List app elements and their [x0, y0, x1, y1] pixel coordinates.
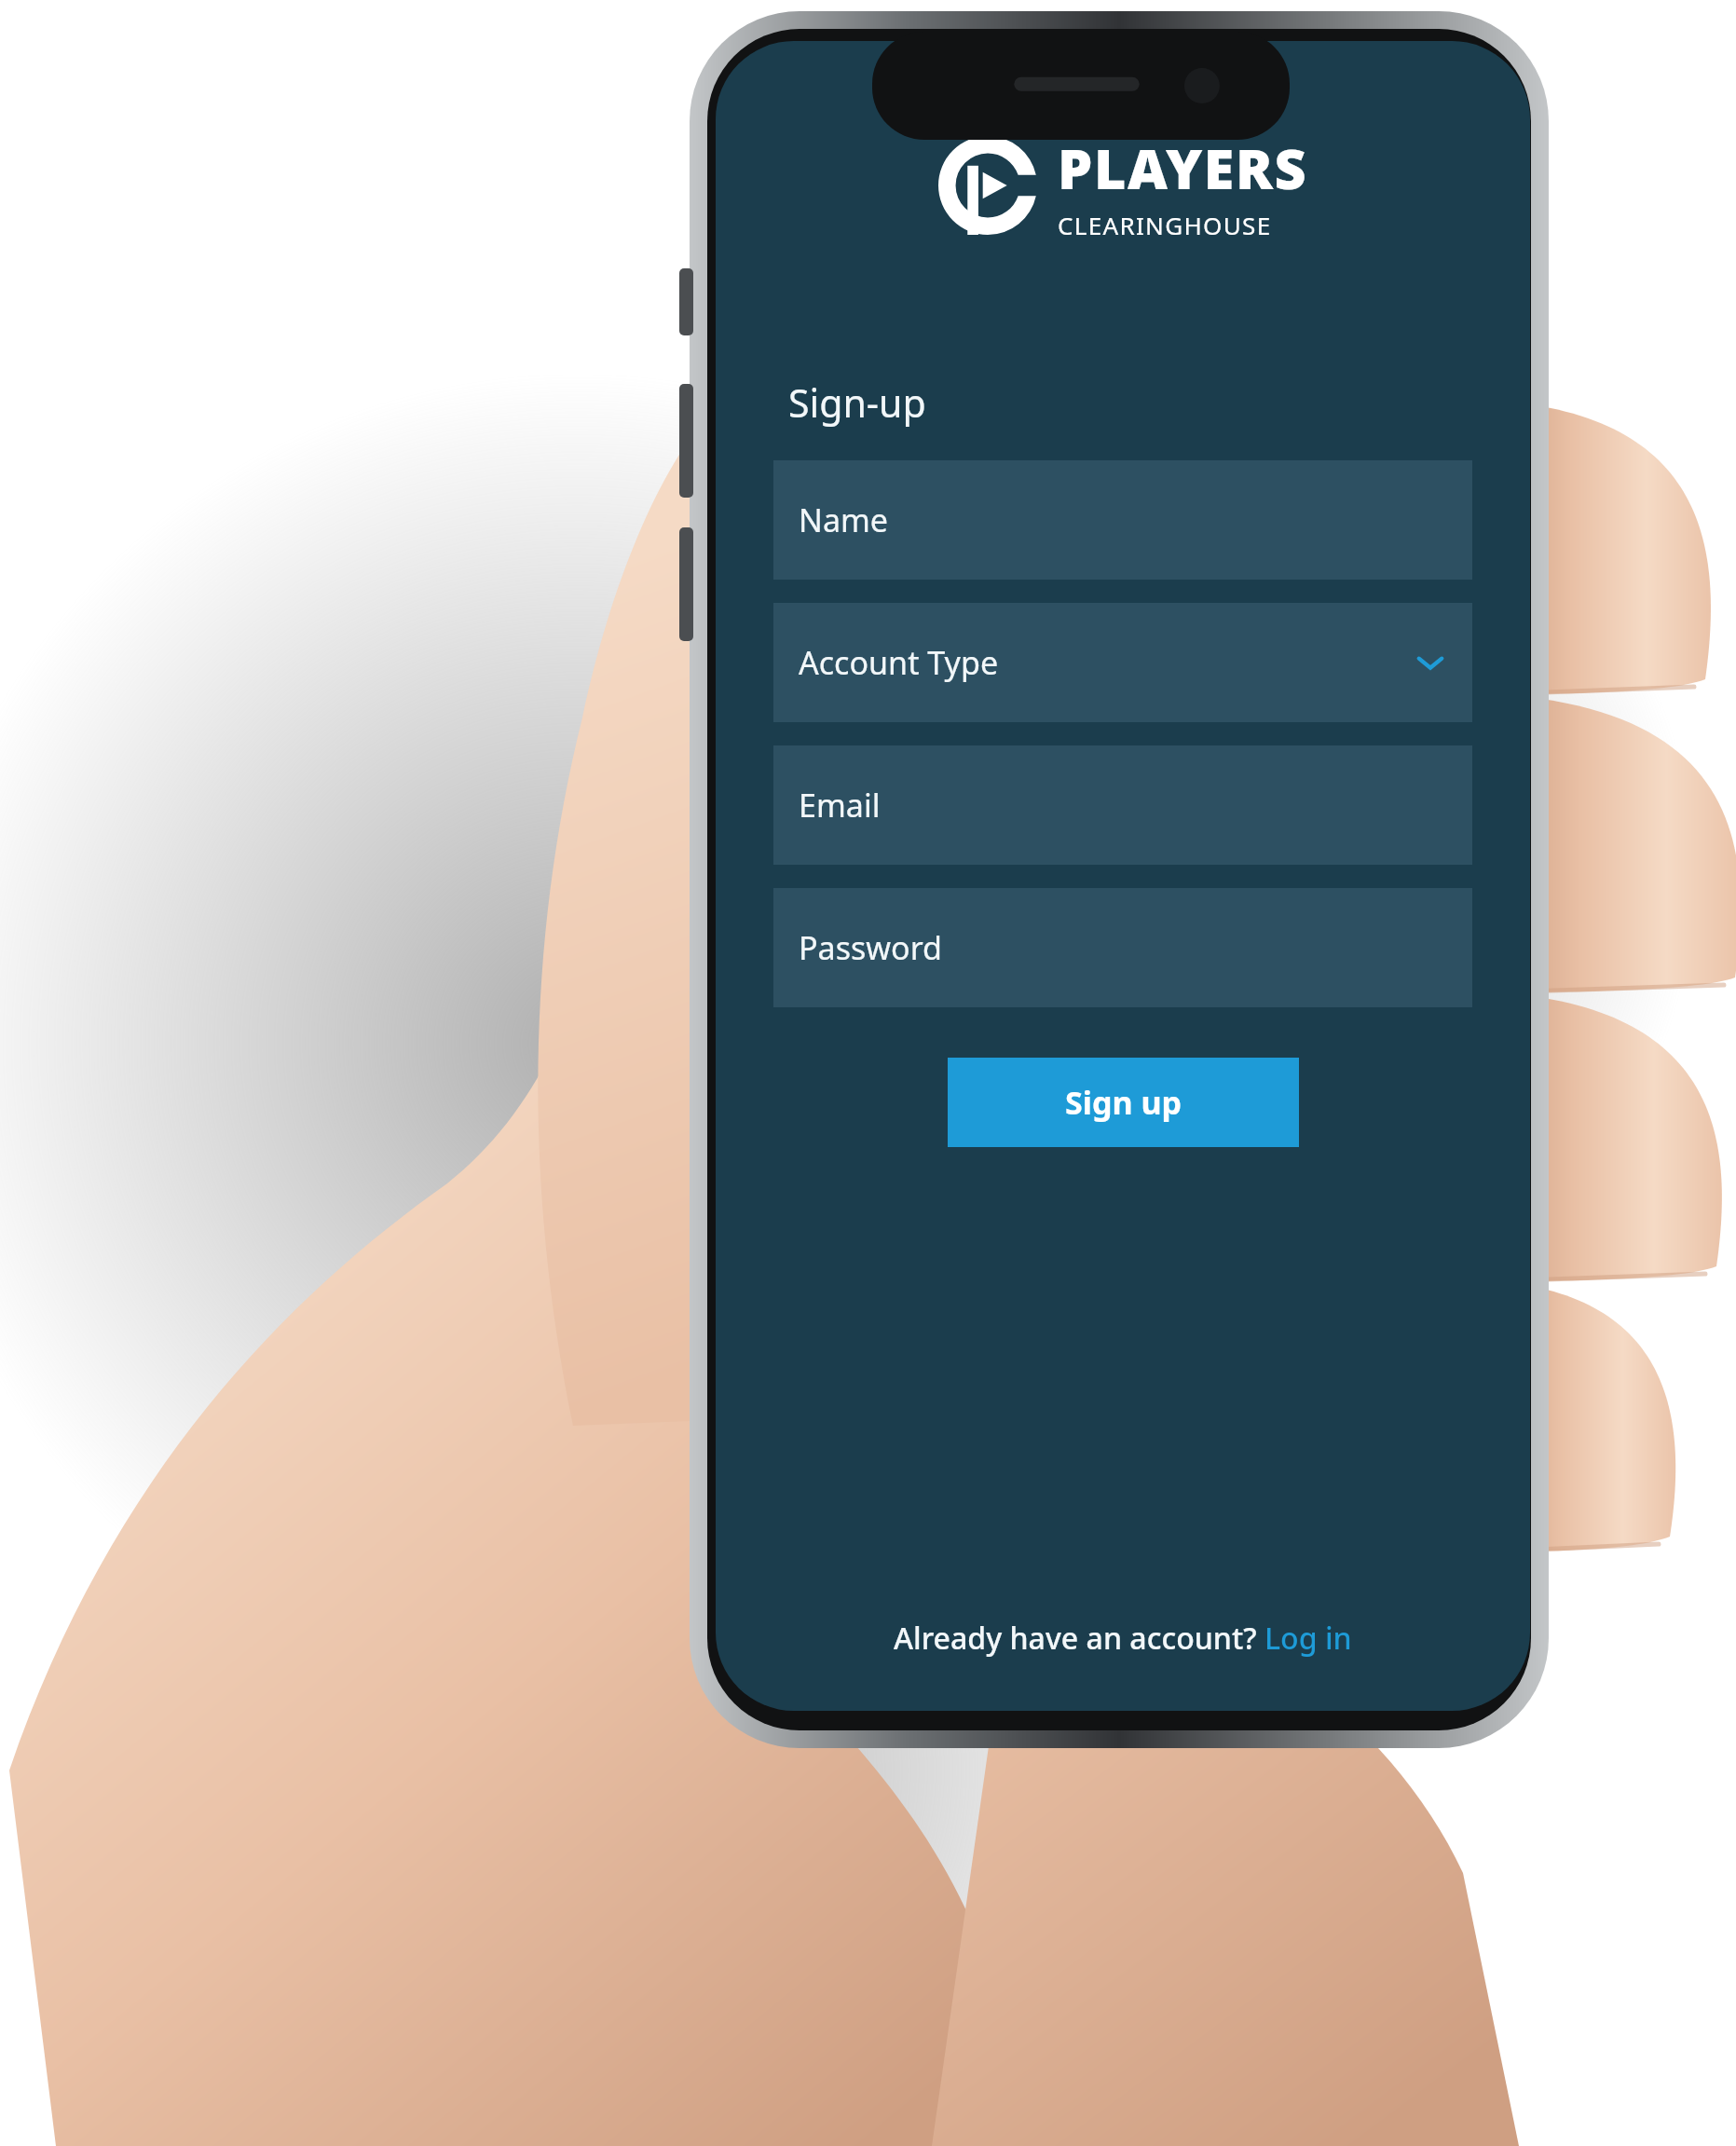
staticText: Already have an account?	[894, 1618, 1264, 1659]
button[interactable]: Password	[773, 888, 1472, 1007]
staticText: Name	[799, 499, 1447, 541]
other: Open account type list	[1414, 646, 1447, 679]
staticText: Sign-up	[788, 376, 926, 429]
staticText: Email	[799, 784, 1447, 827]
other: Players Clearinghouse logo	[938, 136, 1037, 235]
staticText: Password	[799, 926, 1447, 969]
staticText: Sign up	[1065, 1081, 1182, 1124]
button[interactable]: Sign up	[948, 1058, 1299, 1147]
button[interactable]: Log in	[1264, 1618, 1352, 1659]
staticText: PLAYERS	[1058, 130, 1308, 206]
button[interactable]: Account Type	[773, 603, 1472, 722]
button[interactable]: Name	[773, 460, 1472, 580]
staticText: Account Type	[799, 641, 1414, 684]
staticText: Log in	[1264, 1618, 1352, 1659]
button[interactable]: Email	[773, 745, 1472, 865]
staticText: CLEARINGHOUSE	[1058, 209, 1272, 240]
